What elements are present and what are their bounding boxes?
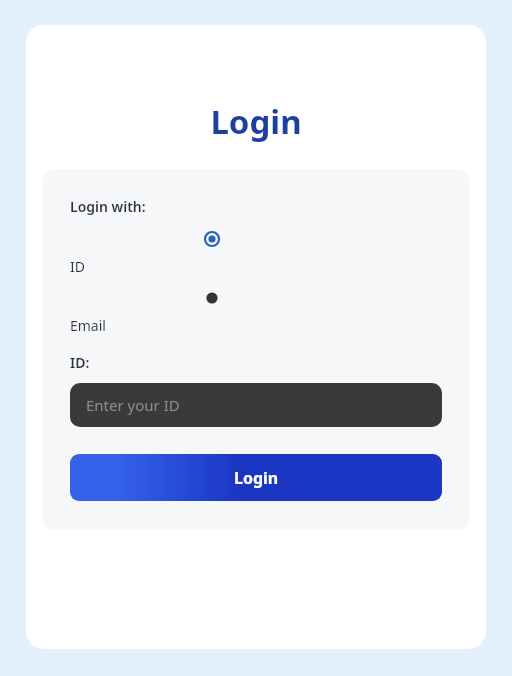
staticText: Login bbox=[26, 99, 486, 144]
button[interactable]: Email bbox=[70, 316, 106, 335]
button[interactable]: Enter your ID bbox=[70, 383, 442, 427]
staticText: Enter your ID bbox=[86, 395, 180, 415]
other: Login with ID bbox=[204, 231, 220, 247]
button[interactable]: Login with ID bbox=[70, 231, 442, 247]
other: Login with Email bbox=[204, 290, 220, 306]
button[interactable]: ID bbox=[70, 257, 85, 276]
button[interactable]: Login with Email bbox=[70, 290, 442, 306]
staticText: Login with: bbox=[70, 197, 146, 216]
staticText: Login bbox=[234, 467, 279, 489]
staticText: ID: bbox=[70, 353, 90, 372]
button[interactable]: Login bbox=[70, 454, 442, 501]
